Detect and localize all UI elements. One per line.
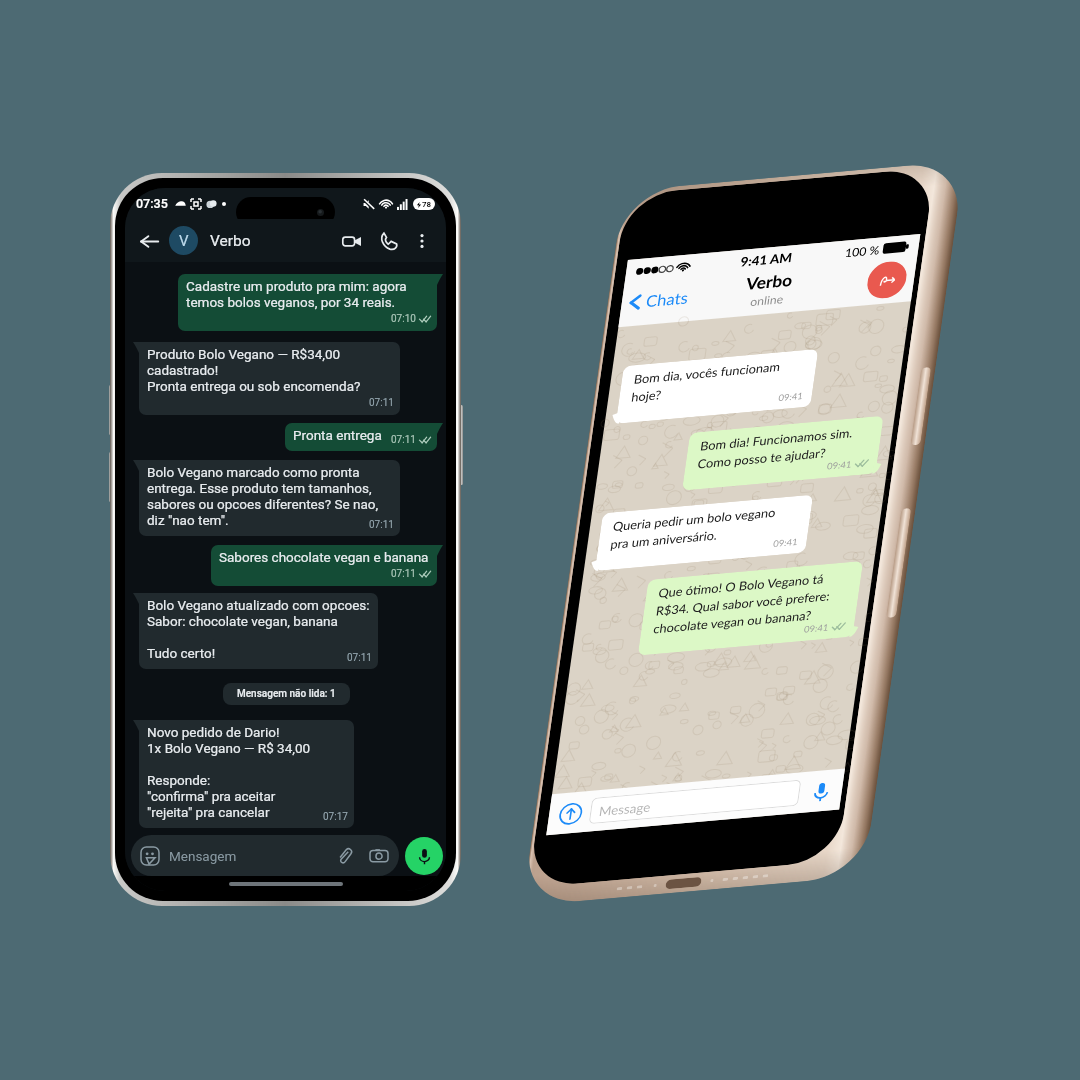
staticText: Mensagem não lida: 1 xyxy=(237,688,336,700)
staticText: 07:17 xyxy=(323,811,348,823)
staticText: Verbo xyxy=(745,270,794,294)
staticText: 07:11 xyxy=(369,519,394,531)
button[interactable]: Bom dia, vocês funcionam hoje? xyxy=(616,349,818,424)
button[interactable]: Video call xyxy=(337,227,365,255)
button[interactable]: Chats xyxy=(626,288,690,312)
staticText: Queria pedir um bolo vegano pra um anive… xyxy=(610,505,777,551)
staticText: Message xyxy=(598,799,652,818)
staticText: 07:11 xyxy=(369,397,394,409)
button[interactable]: Voice message xyxy=(807,779,835,804)
button[interactable]: Pronta entrega xyxy=(285,423,437,451)
button[interactable]: Attach xyxy=(556,801,584,826)
button[interactable]: Novo pedido de Dario! 1x Bolo Vegano — R… xyxy=(139,720,354,828)
button[interactable]: More options xyxy=(410,229,434,253)
button[interactable]: Back xyxy=(135,227,163,255)
button[interactable]: Bolo Vegano atualizado com opcoes: Sabor… xyxy=(139,593,378,669)
staticText: Produto Bolo Vegano — R$34,00 cadastrado… xyxy=(147,346,361,394)
staticText: Bolo Vegano atualizado com opcoes: Sabor… xyxy=(147,597,370,661)
staticText: Bom dia! Funcionamos sim. Como posso te … xyxy=(697,426,854,471)
staticText: 09:41 xyxy=(778,391,804,403)
staticText: 78 xyxy=(422,200,432,209)
button[interactable]: Bom dia! Funcionamos sim. Como posso te … xyxy=(682,416,884,491)
staticText: Novo pedido de Dario! 1x Bolo Vegano — R… xyxy=(147,724,311,820)
button[interactable]: Produto Bolo Vegano — R$34,00 cadastrado… xyxy=(139,342,400,415)
button[interactable]: Queria pedir um bolo vegano pra um anive… xyxy=(595,495,813,571)
staticText: Verbo xyxy=(210,232,251,250)
staticText: Bolo Vegano marcado como pronta entrega.… xyxy=(147,464,379,528)
staticText: 9:41 AM xyxy=(740,249,794,269)
staticText: Bom dia, vocês funcionam hoje? xyxy=(631,359,782,404)
button[interactable]: Bolo Vegano marcado como pronta entrega.… xyxy=(139,460,400,536)
staticText: 09:41 xyxy=(772,536,798,549)
staticText: 07:11 xyxy=(347,652,372,664)
button[interactable]: Mensagem xyxy=(131,835,399,876)
button[interactable]: Call xyxy=(375,227,403,255)
button[interactable]: Contact profile xyxy=(865,260,909,300)
staticText: Chats xyxy=(645,288,690,310)
staticText: 07:11 xyxy=(391,434,416,446)
staticText: 09:41 xyxy=(826,459,852,472)
button[interactable]: Voice message xyxy=(405,837,443,875)
button[interactable]: Cadastre um produto pra mim: agora temos… xyxy=(178,274,437,331)
staticText: Sabores chocolate vegan e banana xyxy=(219,549,429,565)
staticText: 100 % xyxy=(844,243,881,259)
staticText: 09:41 xyxy=(803,622,829,635)
button[interactable]: Message xyxy=(588,779,802,824)
staticText: Mensagem xyxy=(169,848,237,864)
staticText: online xyxy=(749,292,785,308)
staticText: V xyxy=(179,232,189,250)
staticText: Pronta entrega xyxy=(293,427,382,443)
staticText: Cadastre um produto pra mim: agora temos… xyxy=(186,278,407,310)
staticText: Que ótimo! O Bolo Vegano tá R$34. Qual s… xyxy=(653,571,833,636)
staticText: 07:35 xyxy=(136,196,168,211)
staticText: 07:11 xyxy=(391,568,416,580)
button[interactable]: Sabores chocolate vegan e banana xyxy=(211,545,437,586)
staticText: 07:10 xyxy=(391,313,416,325)
button[interactable]: Que ótimo! O Bolo Vegano tá R$34. Qual s… xyxy=(638,561,863,656)
